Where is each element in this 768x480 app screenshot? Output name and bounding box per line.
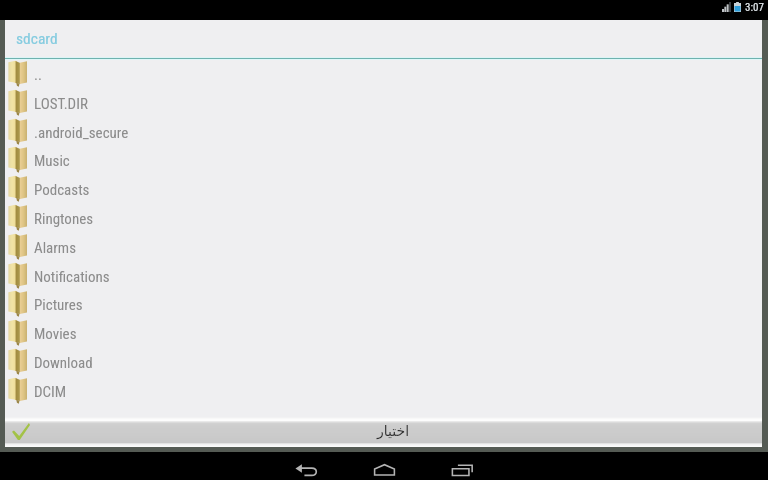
button[interactable]: Pictures — [5, 290, 762, 319]
staticText: Notifications — [34, 268, 110, 286]
staticText: sdcard — [16, 30, 58, 48]
button[interactable]: Podcasts — [5, 175, 762, 204]
staticText: Podcasts — [34, 181, 90, 199]
staticText: DCIM — [34, 383, 67, 401]
button[interactable]: .. — [5, 60, 762, 89]
button[interactable]: Ringtones — [5, 204, 762, 233]
staticText: 3:07 — [745, 1, 764, 14]
button[interactable]: Music — [5, 146, 762, 175]
button[interactable]: اختيار — [5, 417, 762, 447]
button[interactable]: Download — [5, 348, 762, 377]
button[interactable]: LOST.DIR — [5, 89, 762, 118]
button[interactable]: DCIM — [5, 377, 762, 406]
button[interactable]: Recent apps — [423, 452, 501, 480]
button[interactable]: Alarms — [5, 233, 762, 262]
staticText: Alarms — [34, 239, 76, 257]
staticText: .android_secure — [34, 124, 129, 142]
staticText: Download — [34, 354, 93, 372]
staticText: LOST.DIR — [34, 95, 88, 113]
staticText: Movies — [34, 325, 77, 343]
staticText: Ringtones — [34, 210, 94, 228]
button[interactable]: .android_secure — [5, 118, 762, 147]
button[interactable]: Back — [267, 452, 345, 480]
staticText: اختيار — [377, 423, 410, 439]
button[interactable]: Movies — [5, 319, 762, 348]
button[interactable]: Home — [345, 452, 423, 480]
staticText: Music — [34, 152, 70, 170]
staticText: Pictures — [34, 296, 83, 314]
staticText: .. — [34, 66, 42, 84]
button[interactable]: Notifications — [5, 262, 762, 291]
